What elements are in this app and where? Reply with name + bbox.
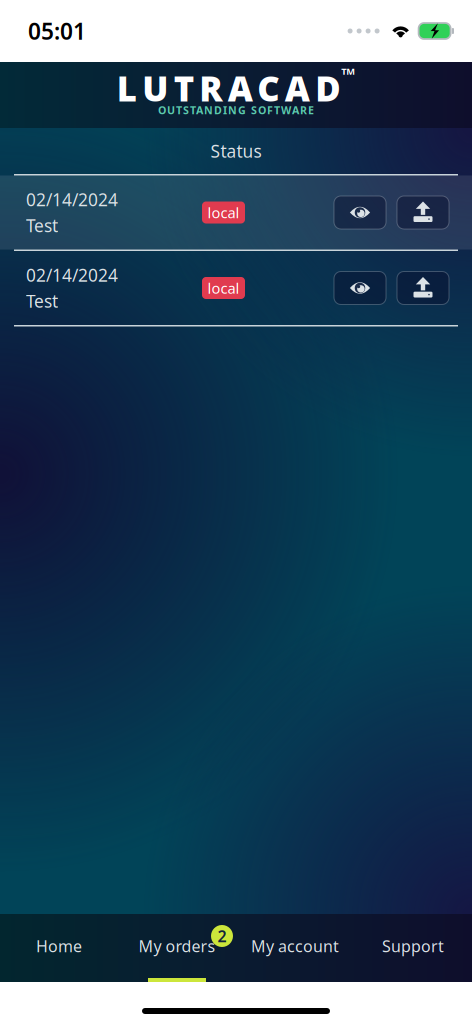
staticText: TM: [341, 65, 355, 77]
staticText: Home: [36, 935, 82, 957]
staticText: 2: [217, 925, 226, 947]
staticText: Support: [382, 935, 444, 957]
staticText: 02/14/2024: [26, 188, 118, 211]
staticText: Status: [210, 139, 261, 162]
staticText: local: [207, 203, 239, 222]
staticText: 05:01: [28, 16, 86, 46]
button[interactable]: View: [334, 271, 386, 304]
staticText: Test: [26, 214, 58, 237]
staticText: LUTRACAD: [117, 65, 340, 111]
staticText: OUTSTANDING SOFTWARE: [158, 103, 314, 117]
staticText: 02/14/2024: [26, 263, 118, 286]
staticText: Test: [26, 289, 58, 312]
button[interactable]: Home: [0, 914, 118, 982]
button[interactable]: Support: [354, 914, 472, 982]
staticText: My account: [251, 935, 339, 957]
staticText: My orders: [138, 935, 215, 957]
button[interactable]: View: [334, 196, 386, 229]
button[interactable]: Upload: [397, 271, 449, 304]
staticText: local: [207, 278, 239, 298]
button[interactable]: My account: [236, 914, 354, 982]
button[interactable]: Upload: [397, 196, 449, 229]
button[interactable]: My orders: [118, 914, 236, 982]
